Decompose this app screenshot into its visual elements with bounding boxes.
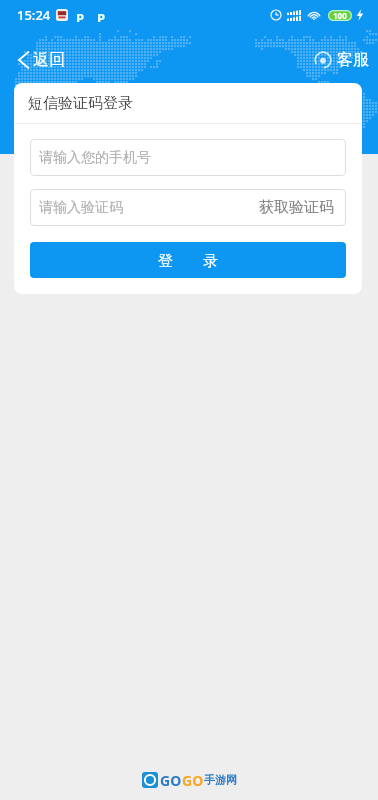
staticText: GO [182,771,204,790]
button[interactable]: 登 录 [30,242,346,278]
staticText: GO [160,771,182,790]
staticText: 短信验证码登录 [28,94,133,113]
staticText: 客服 [337,50,369,70]
button[interactable]: 返回 [0,45,79,75]
button[interactable]: 客服 [300,45,378,75]
staticText: 获取验证码 [259,198,334,217]
staticText: 100 [333,10,347,21]
staticText: 返回 [33,50,65,70]
button[interactable]: 获取验证码 [247,189,346,226]
staticText: P [76,9,85,22]
staticText: 手游网 [204,773,237,787]
staticText: P [97,9,106,22]
staticText: 请输入您的手机号 [39,149,151,167]
button[interactable]: 请输入您的手机号 [30,139,346,176]
staticText: 15:24 [17,6,51,24]
staticText: 登 录 [158,250,218,270]
staticText: 请输入验证码 [39,199,123,217]
